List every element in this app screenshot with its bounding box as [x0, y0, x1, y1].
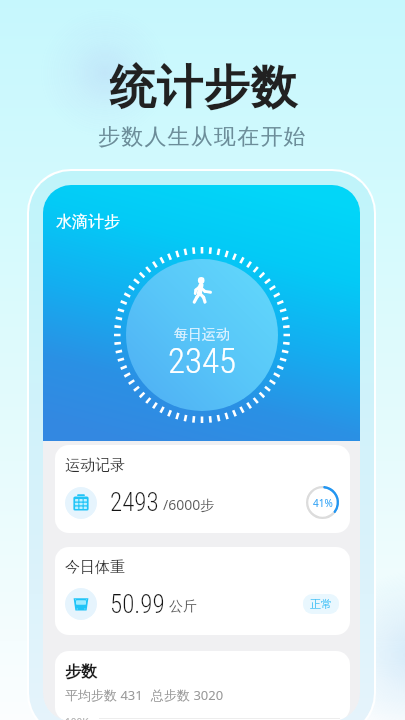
staticText: 50.99	[110, 590, 165, 619]
staticText: 41%	[313, 496, 333, 510]
staticText: 正常	[310, 597, 332, 611]
button[interactable]: 运动记录	[55, 445, 350, 533]
button[interactable]: 水滴计步	[56, 212, 120, 232]
staticText: 步数人生从现在开始	[98, 123, 307, 151]
staticText: 每日运动	[174, 326, 230, 344]
button[interactable]: 今日体重	[55, 547, 350, 635]
other: Walking	[186, 275, 218, 307]
staticText: 统计步数	[109, 59, 297, 117]
button[interactable]: 步数	[55, 651, 350, 720]
staticText: 公斤	[169, 598, 197, 616]
staticText: /6000步	[163, 495, 215, 514]
staticText: 2493	[110, 488, 159, 517]
staticText: 总步数 3020	[151, 686, 224, 704]
staticText: 今日体重	[65, 558, 125, 577]
staticText: 水滴计步	[56, 212, 120, 232]
staticText: 100K	[65, 715, 89, 720]
staticText: 平均步数 431	[65, 686, 143, 704]
staticText: 运动记录	[65, 456, 125, 475]
staticText: 步数	[65, 662, 97, 682]
staticText: 2345	[168, 341, 237, 382]
